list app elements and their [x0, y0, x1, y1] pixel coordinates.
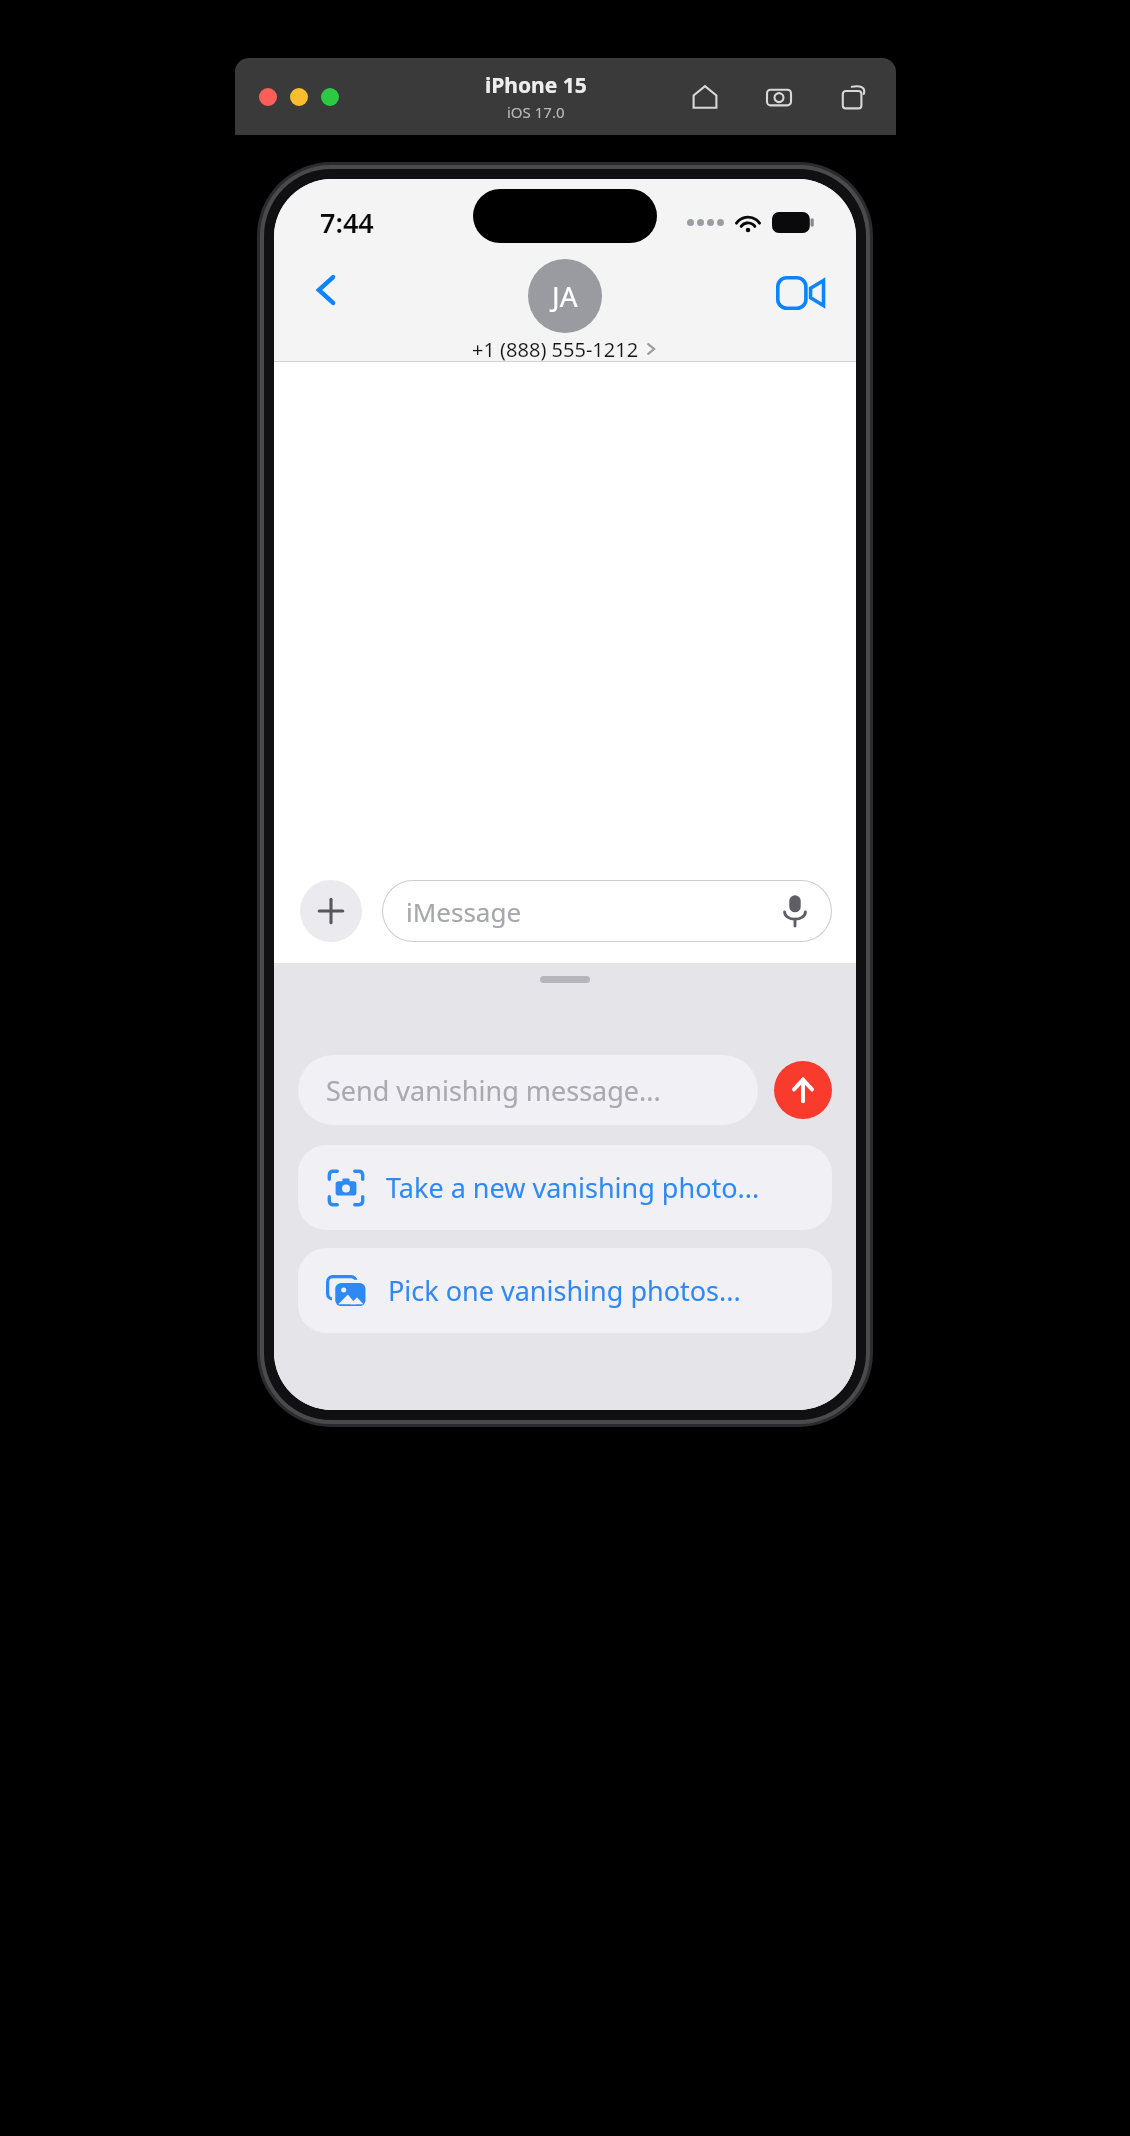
button[interactable]: iMessage — [382, 880, 832, 942]
staticText: 7:44 — [320, 204, 374, 241]
staticText: Take a new vanishing photo... — [386, 1169, 760, 1206]
button[interactable]: Screenshot — [762, 80, 796, 114]
staticText: iPhone 15 — [485, 71, 587, 100]
button[interactable]: FaceTime video call — [770, 263, 830, 323]
button[interactable]: Take a new vanishing photo... — [298, 1145, 832, 1230]
staticText: iMessage — [406, 894, 522, 929]
button[interactable]: Send vanishing message... — [298, 1055, 758, 1125]
button[interactable]: Dictate — [778, 894, 812, 928]
button[interactable]: Pick one vanishing photos... — [298, 1248, 832, 1333]
button[interactable] — [321, 88, 339, 106]
button[interactable]: JA — [472, 259, 658, 361]
button[interactable] — [290, 88, 308, 106]
button[interactable]: Add attachment — [300, 880, 362, 942]
staticText: +1 (888) 555-1212 — [472, 336, 639, 361]
staticText: Pick one vanishing photos... — [388, 1272, 741, 1309]
button[interactable]: Rotate — [836, 80, 870, 114]
button[interactable] — [259, 88, 277, 106]
staticText: iOS 17.0 — [507, 102, 565, 122]
button[interactable]: Send — [774, 1061, 832, 1119]
button[interactable]: Back — [298, 261, 356, 319]
button[interactable]: Home — [688, 80, 722, 114]
staticText: Send vanishing message... — [326, 1072, 661, 1109]
staticText: JA — [552, 277, 578, 315]
